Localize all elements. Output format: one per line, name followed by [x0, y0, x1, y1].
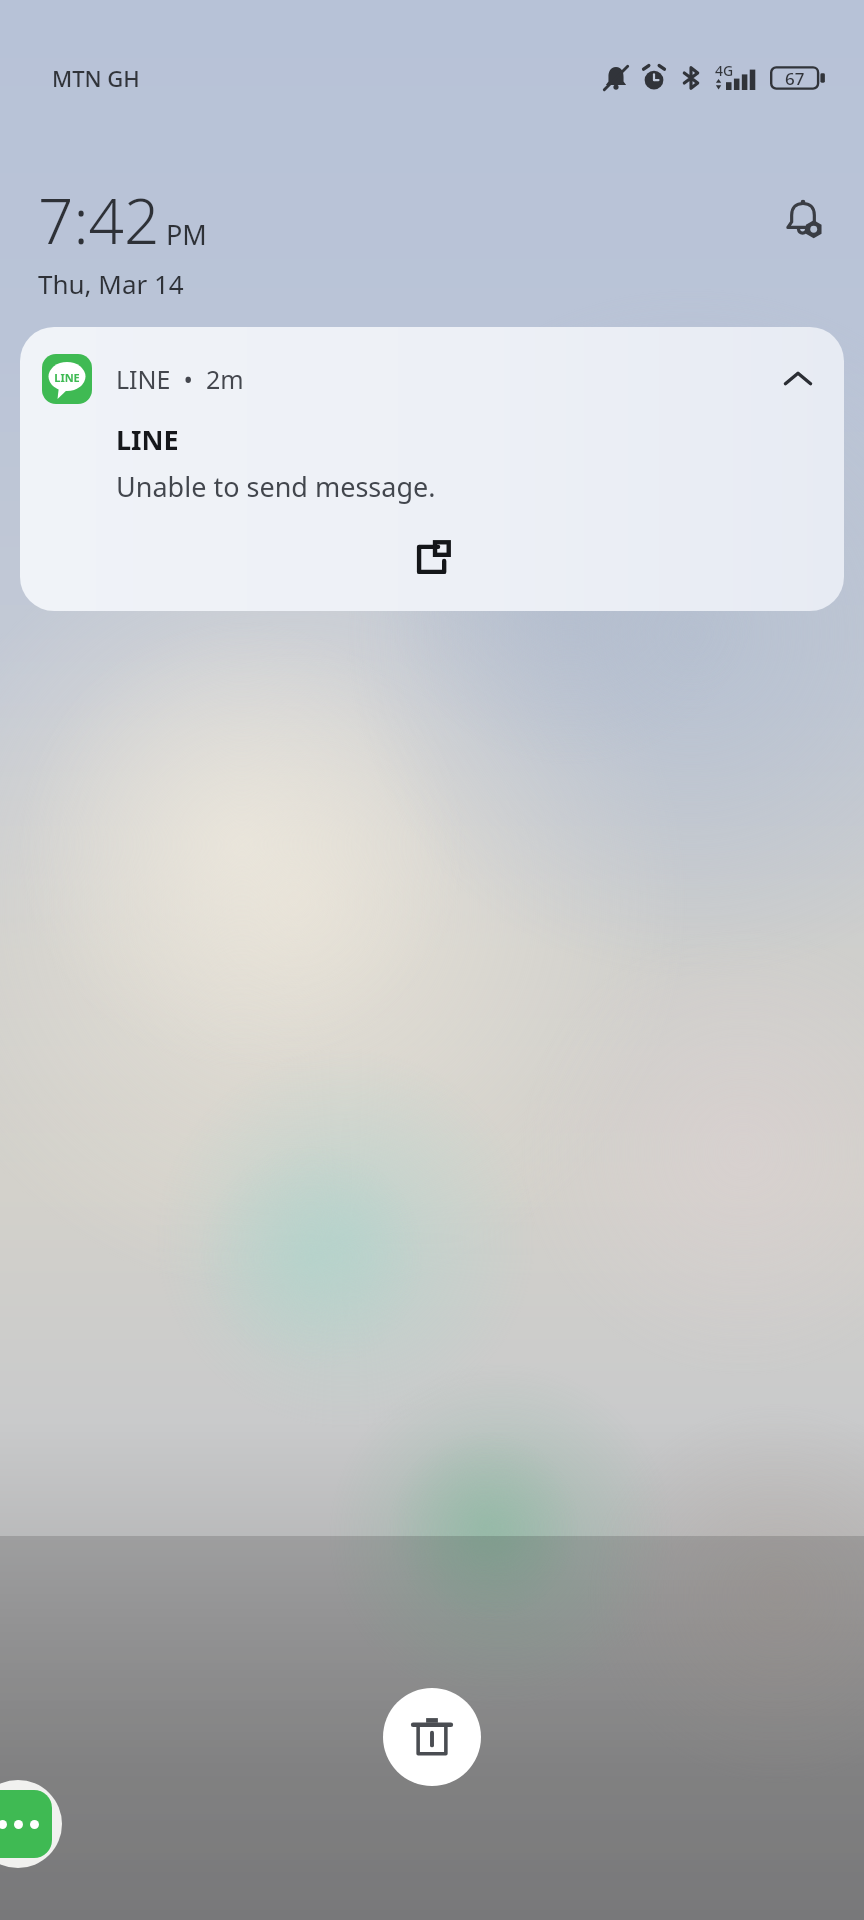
button[interactable]: Collapse notification [772, 353, 824, 405]
staticText: Unable to send message. [116, 468, 436, 505]
staticText: PM [166, 216, 207, 253]
staticText: 4G [715, 61, 734, 80]
button[interactable]: Open in floating window [400, 527, 464, 591]
button[interactable]: LINE [20, 327, 844, 611]
staticText: MTN GH [52, 63, 140, 93]
staticText: 67 [785, 67, 805, 90]
button[interactable]: Clear all notifications [383, 1688, 481, 1786]
staticText: LINE • 2m [116, 362, 244, 396]
button[interactable]: Notification settings [772, 188, 834, 250]
staticText: Thu, Mar 14 [38, 266, 184, 301]
button[interactable]: Chat bubble [0, 1780, 62, 1868]
staticText: LINE [116, 421, 179, 458]
staticText: 7:42 [38, 178, 160, 262]
staticText: LINE [54, 370, 80, 385]
